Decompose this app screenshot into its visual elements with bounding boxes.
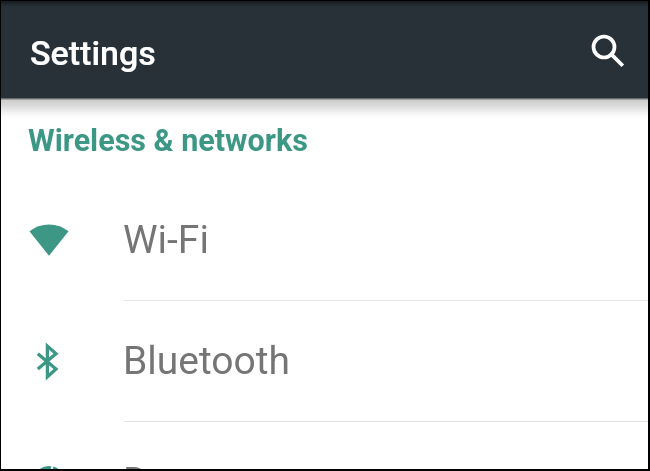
button[interactable]: Data usage	[1, 422, 648, 469]
staticText: Settings	[30, 33, 156, 73]
staticText: Data usage	[123, 459, 319, 469]
button[interactable]: Wi-Fi	[1, 180, 648, 301]
staticText: Wi-Fi	[123, 217, 209, 263]
staticText: Bluetooth	[123, 338, 291, 384]
button[interactable]: Search	[579, 21, 635, 77]
button[interactable]: Bluetooth	[1, 301, 648, 422]
staticText: Wireless & networks	[28, 123, 308, 159]
